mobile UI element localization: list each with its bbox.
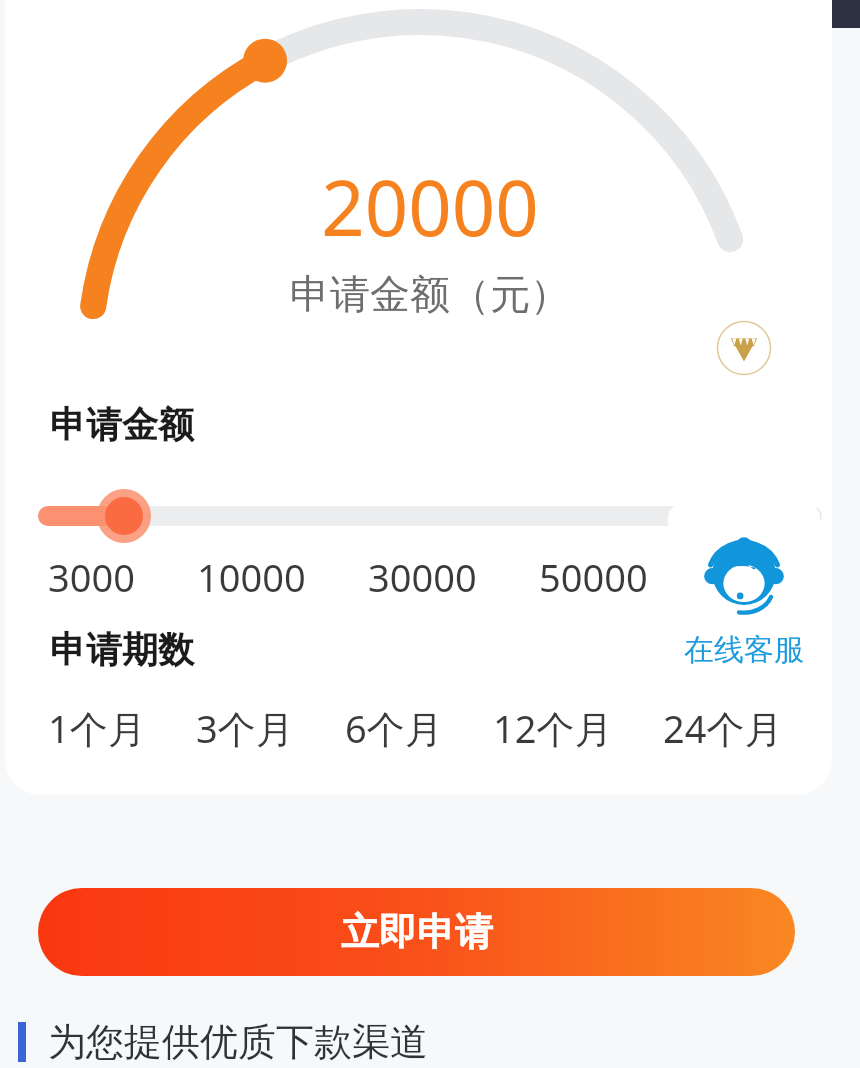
staticText: 3000: [48, 551, 135, 603]
staticText: 12个月: [493, 702, 613, 754]
staticText: 6个月: [345, 702, 443, 754]
button[interactable]: 3个月: [196, 702, 294, 754]
staticText: 30000: [368, 551, 477, 603]
staticText: 申请期数: [50, 627, 194, 672]
button[interactable]: 立即申请: [38, 888, 795, 976]
staticText: 24个月: [663, 702, 783, 754]
button[interactable]: 3000: [48, 551, 135, 603]
button[interactable]: 24个月: [663, 702, 783, 754]
staticText: 在线客服: [684, 631, 804, 669]
button[interactable]: VIP level: [716, 320, 772, 376]
button[interactable]: 30000: [368, 551, 477, 603]
staticText: 为您提供优质下款渠道: [48, 1018, 428, 1066]
staticText: 1个月: [48, 702, 146, 754]
button[interactable]: 在线客服: [668, 504, 820, 698]
staticText: 立即申请: [341, 908, 493, 956]
staticText: 3个月: [196, 702, 294, 754]
button[interactable]: Loan amount slider: [38, 486, 822, 546]
button[interactable]: 12个月: [493, 702, 613, 754]
staticText: 申请金额: [50, 402, 194, 447]
button[interactable]: 1个月: [48, 702, 146, 754]
button[interactable]: 6个月: [345, 702, 443, 754]
button[interactable]: 50000: [539, 551, 648, 603]
staticText: 10000: [197, 551, 306, 603]
staticText: 20000: [321, 155, 539, 259]
button[interactable]: 10000: [197, 551, 306, 603]
staticText: 50000: [539, 551, 648, 603]
staticText: 申请金额（元）: [290, 269, 570, 319]
